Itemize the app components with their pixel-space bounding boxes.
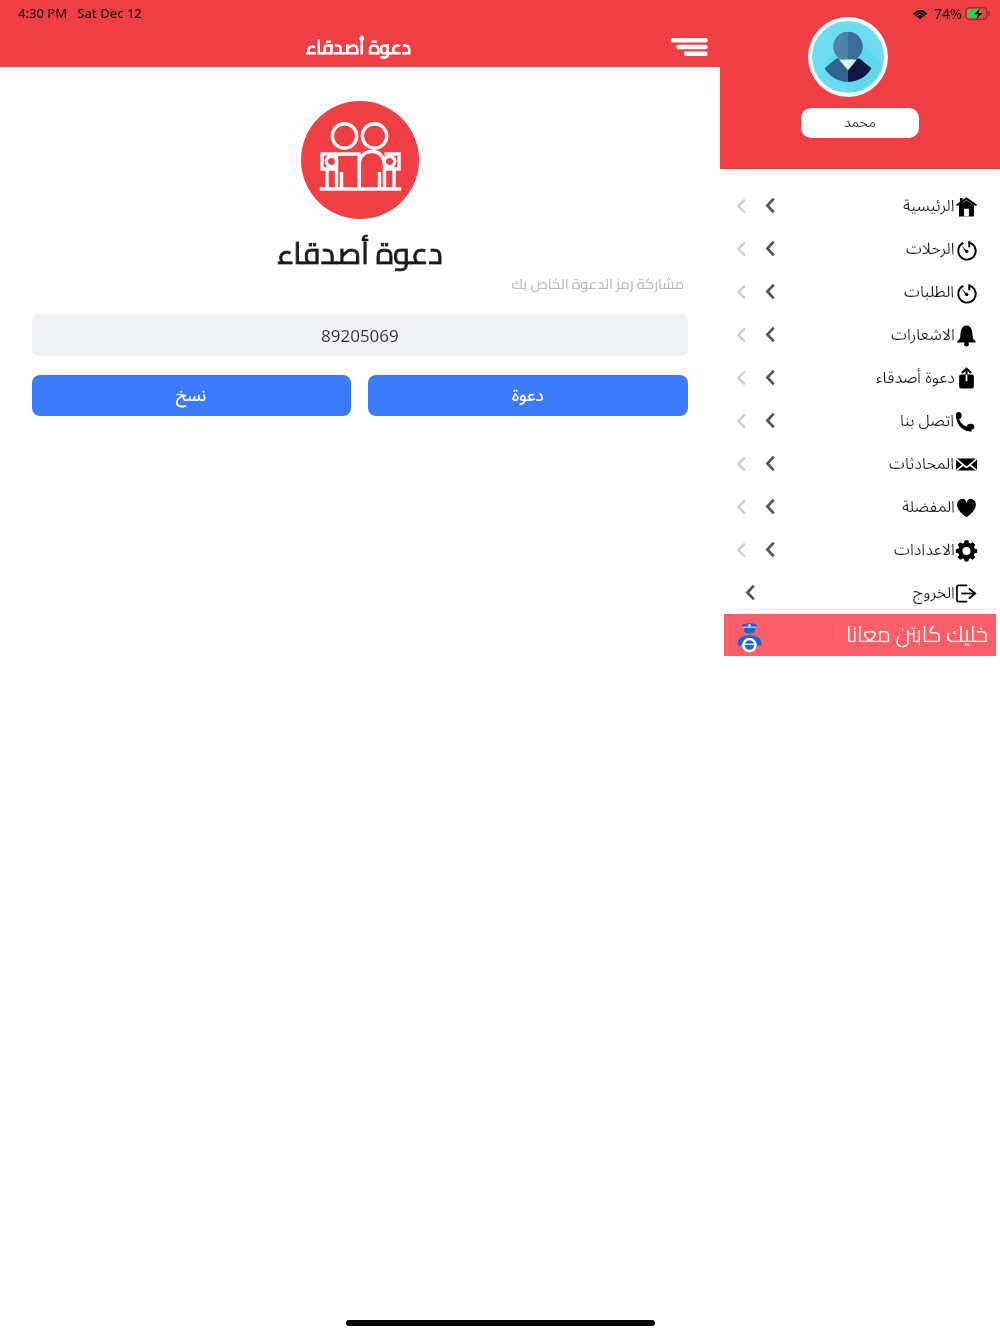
button[interactable]: دعوة أصدقاء xyxy=(720,356,1000,399)
button[interactable]: المفضلة xyxy=(720,485,1000,528)
staticText: الاشعارات xyxy=(891,318,955,352)
button[interactable]: الاعدادات xyxy=(720,528,1000,571)
button[interactable]: Open navigation menu xyxy=(660,23,712,67)
button[interactable]: الرئيسية xyxy=(720,184,1000,227)
staticText: خليك كابتن معانا xyxy=(846,613,988,655)
staticText: 89205069 xyxy=(321,324,399,347)
button[interactable]: الاشعارات xyxy=(720,313,1000,356)
button[interactable]: الطلبات xyxy=(720,270,1000,313)
staticText: دعوة أصدقاء xyxy=(277,225,443,281)
staticText: 74% xyxy=(934,4,962,23)
staticText: دعوة xyxy=(512,378,544,414)
button[interactable]: المحادثات xyxy=(720,442,1000,485)
staticText: محمد xyxy=(844,108,876,138)
staticText: المحادثات xyxy=(889,447,955,481)
staticText: الخروج xyxy=(913,576,955,610)
staticText: الاعدادات xyxy=(894,533,955,567)
button[interactable]: محمد xyxy=(801,108,919,138)
staticText: الرحلات xyxy=(906,232,955,266)
button[interactable]: خليك كابتن معانا xyxy=(724,614,996,656)
button[interactable]: الرحلات xyxy=(720,227,1000,270)
staticText: دعوة أصدقاء xyxy=(306,29,412,65)
staticText: الطلبات xyxy=(904,275,955,309)
staticText: المفضلة xyxy=(902,490,955,524)
staticText: اتصل بنا xyxy=(900,404,955,438)
staticText: نسخ xyxy=(176,378,207,414)
button[interactable]: الخروج xyxy=(720,571,1000,614)
staticText: مشاركة رمز الدعوة الخاص بك xyxy=(28,270,684,297)
staticText: دعوة أصدقاء xyxy=(306,29,412,65)
button[interactable]: اتصل بنا xyxy=(720,399,1000,442)
button[interactable]: نسخ xyxy=(32,375,351,416)
staticText: 4:30 PM Sat Dec 12 xyxy=(18,4,142,22)
button[interactable]: 89205069 xyxy=(32,314,688,356)
staticText: دعوة أصدقاء xyxy=(277,225,443,281)
staticText: الرئيسية xyxy=(903,189,955,223)
button[interactable]: دعوة xyxy=(368,375,688,416)
staticText: دعوة أصدقاء xyxy=(876,361,955,395)
